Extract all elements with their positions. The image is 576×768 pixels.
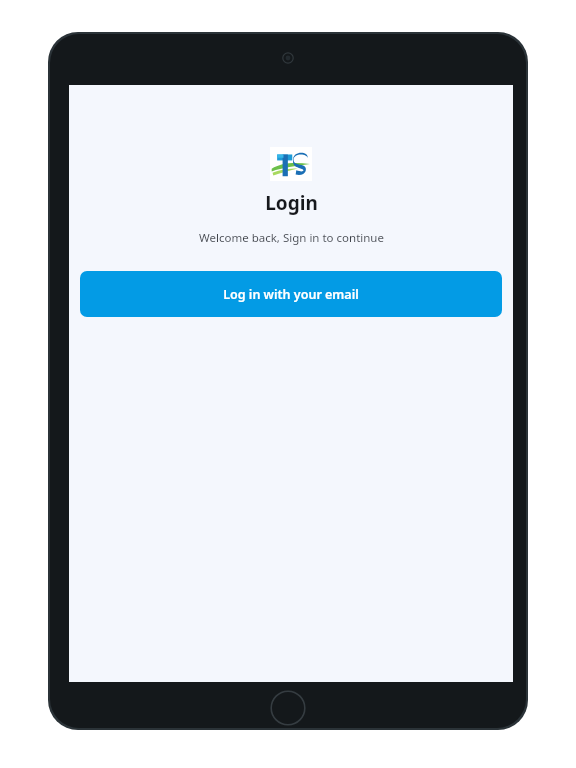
button[interactable]: Log in with your email [80, 271, 502, 317]
staticText: Log in with your email [223, 286, 359, 303]
staticText: Login [265, 190, 318, 216]
staticText: Welcome back, Sign in to continue [199, 230, 384, 246]
other: TS logo [270, 147, 312, 181]
